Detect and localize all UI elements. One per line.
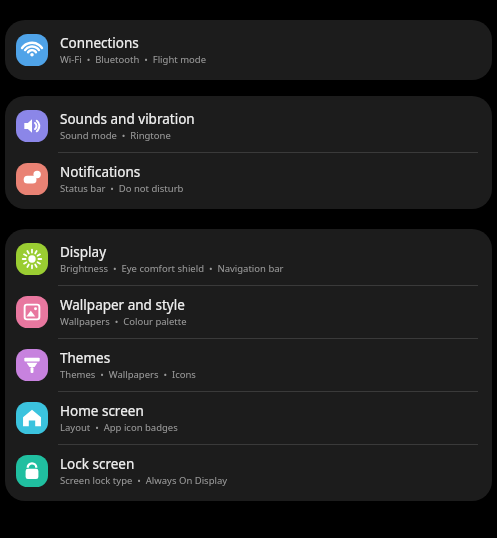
other: Home screen bbox=[16, 402, 48, 434]
staticText: Display bbox=[60, 243, 107, 261]
button[interactable]: Wallpaper and style bbox=[5, 286, 492, 338]
other: Display bbox=[16, 243, 48, 275]
staticText: Home screen bbox=[60, 402, 144, 420]
staticText: Themes • Wallpapers • Icons bbox=[60, 368, 196, 381]
other: Wallpaper and style bbox=[16, 296, 48, 328]
staticText: Lock screen bbox=[60, 455, 135, 473]
other: Sounds and vibration bbox=[16, 110, 48, 142]
staticText: Themes bbox=[60, 349, 111, 367]
staticText: Sounds and vibration bbox=[60, 110, 195, 128]
staticText: Notifications bbox=[60, 163, 141, 181]
staticText: Screen lock type • Always On Display bbox=[60, 474, 228, 487]
other: Themes bbox=[16, 349, 48, 381]
staticText: Layout • App icon badges bbox=[60, 421, 178, 434]
button[interactable]: Sounds and vibration bbox=[5, 100, 492, 152]
button[interactable]: Themes bbox=[5, 339, 492, 391]
staticText: Connections bbox=[60, 34, 139, 52]
staticText: Wallpaper and style bbox=[60, 296, 185, 314]
staticText: Brightness • Eye comfort shield • Naviga… bbox=[60, 262, 284, 275]
button[interactable]: Lock screen bbox=[5, 445, 492, 497]
button[interactable]: Home screen bbox=[5, 392, 492, 444]
staticText: Status bar • Do not disturb bbox=[60, 182, 184, 195]
other: Connections bbox=[16, 34, 48, 66]
staticText: Wi-Fi • Bluetooth • Flight mode bbox=[60, 53, 206, 66]
staticText: Sound mode • Ringtone bbox=[60, 129, 171, 142]
button[interactable]: Display bbox=[5, 233, 492, 285]
button[interactable]: Notifications bbox=[5, 153, 492, 205]
other: Lock screen bbox=[16, 455, 48, 487]
other: Notifications bbox=[16, 163, 48, 195]
button[interactable]: Connections bbox=[5, 24, 492, 76]
staticText: Wallpapers • Colour palette bbox=[60, 315, 187, 328]
